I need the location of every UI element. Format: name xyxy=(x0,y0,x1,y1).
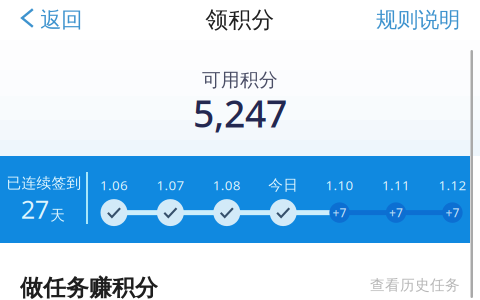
staticText: 查看历史任务 xyxy=(370,276,460,294)
staticText: 1.06 xyxy=(100,176,128,194)
staticText: 已连续签到 xyxy=(6,174,81,192)
staticText: 1.12 xyxy=(438,176,466,194)
staticText: 规则说明 xyxy=(376,7,460,33)
staticText: +7 xyxy=(389,205,403,220)
staticText: 天 xyxy=(50,206,65,224)
staticText: 做任务赚积分 xyxy=(20,274,158,300)
staticText: +7 xyxy=(333,205,347,220)
staticText: +7 xyxy=(445,205,459,220)
staticText: 今日 xyxy=(268,176,298,194)
staticText: 领积分 xyxy=(205,6,274,34)
staticText: 1.07 xyxy=(156,176,184,194)
button[interactable]: 查看历史任务 xyxy=(350,274,460,300)
staticText: 返回 xyxy=(40,7,82,33)
staticText: 1.08 xyxy=(213,176,241,194)
staticText: 5,247 xyxy=(193,88,287,138)
staticText: 1.10 xyxy=(326,176,354,194)
button[interactable]: 返回 xyxy=(0,0,94,40)
staticText: 可用积分 xyxy=(202,68,278,91)
staticText: 27 xyxy=(21,192,49,226)
staticText: 1.11 xyxy=(382,176,410,194)
button[interactable]: 规则说明 xyxy=(362,0,480,40)
